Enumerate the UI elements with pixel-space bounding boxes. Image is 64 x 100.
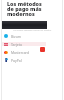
button[interactable]: Imagen del artículo [2, 21, 47, 29]
button[interactable]: Bizum [2, 33, 64, 39]
button[interactable]: Suscríbete [40, 47, 45, 52]
button[interactable]: Mastercard [2, 49, 64, 55]
staticText: Bizum [11, 34, 21, 39]
staticText: PayPal [11, 58, 22, 63]
staticText: Los métodos de pago más modernos [7, 0, 42, 18]
button[interactable]: Tarjeta [2, 41, 64, 47]
staticText: Los pagos digitales crecen en España [13, 29, 52, 32]
staticText: Mastercard [11, 50, 30, 55]
staticText: Tarjeta [11, 42, 22, 47]
button[interactable]: PayPal [2, 57, 64, 63]
